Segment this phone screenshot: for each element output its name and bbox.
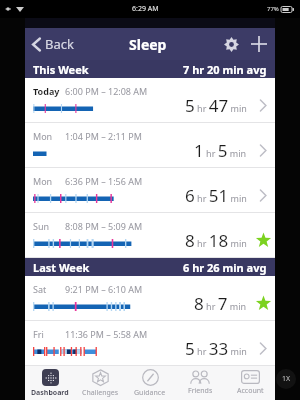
- staticText: 6:36 PM – 1:56 AM: [65, 175, 143, 187]
- button[interactable]: Challenges: [75, 366, 125, 400]
- button[interactable]: Back: [25, 29, 80, 59]
- button[interactable]: Settings: [217, 30, 245, 58]
- staticText: 8 hr 7 min: [194, 292, 247, 315]
- staticText: 9:21 PM – 6:10 AM: [65, 283, 143, 295]
- staticText: 11:36 PM – 5:58 AM: [65, 328, 148, 340]
- staticText: Today: [33, 85, 65, 97]
- staticText: Sleep: [129, 35, 167, 54]
- button[interactable]: Mon: [25, 168, 275, 213]
- staticText: 8 hr 18 min: [185, 229, 247, 252]
- staticText: Guidance: [134, 388, 166, 398]
- staticText: Back: [45, 35, 74, 53]
- staticText: Last Week: [33, 260, 90, 275]
- staticText: Sun: [33, 220, 65, 232]
- button[interactable]: Sat: [25, 276, 275, 321]
- staticText: 5 hr 33 min: [185, 337, 247, 360]
- staticText: 6 hr 51 min: [185, 184, 247, 207]
- button[interactable]: Guidance: [125, 366, 175, 400]
- button[interactable]: Dashboard: [25, 366, 75, 400]
- staticText: Mon: [33, 130, 65, 142]
- button[interactable]: Friends: [175, 366, 225, 400]
- button[interactable]: Add: [245, 30, 273, 58]
- staticText: 5 hr 47 min: [185, 94, 247, 117]
- staticText: Account: [237, 386, 264, 396]
- staticText: This Week: [33, 62, 89, 77]
- staticText: 1:04 PM – 2:11 PM: [65, 130, 142, 142]
- staticText: Challenges: [82, 388, 119, 398]
- button[interactable]: Fri: [25, 321, 275, 366]
- staticText: Fri: [33, 328, 65, 340]
- button[interactable]: Today: [25, 78, 275, 123]
- button[interactable]: Sun: [25, 213, 275, 258]
- staticText: 6:29 AM: [132, 4, 159, 14]
- staticText: 8:08 PM – 5:09 AM: [65, 220, 143, 232]
- staticText: Sat: [33, 283, 65, 295]
- button[interactable]: Mon: [25, 123, 275, 168]
- staticText: Friends: [188, 386, 213, 396]
- staticText: 1 hr 5 min: [194, 139, 247, 162]
- staticText: 7 hr 20 min avg: [183, 62, 267, 77]
- staticText: 6:00 PM – 12:08 AM: [65, 85, 148, 97]
- staticText: 1X: [282, 374, 291, 384]
- button[interactable]: Account: [225, 366, 275, 400]
- staticText: 77%: [267, 5, 279, 13]
- staticText: Mon: [33, 175, 65, 187]
- staticText: 6 hr 26 min avg: [183, 260, 267, 275]
- staticText: Dashboard: [31, 388, 69, 398]
